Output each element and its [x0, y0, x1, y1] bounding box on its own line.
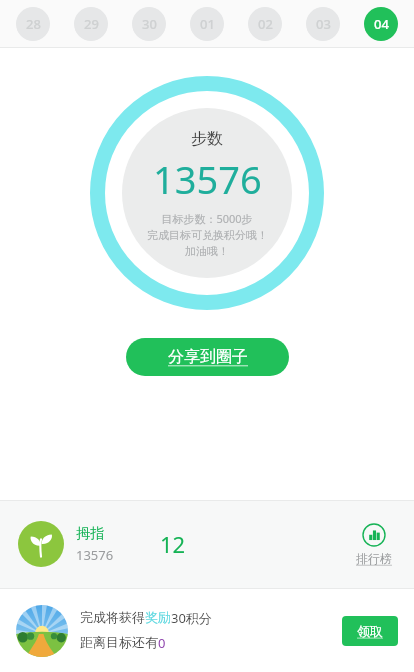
staticText: 01	[200, 15, 215, 33]
staticText: 目标步数：5000步	[161, 211, 253, 226]
staticText: 13576	[153, 153, 262, 205]
staticText: 02	[258, 15, 273, 33]
staticText: 30	[142, 15, 157, 33]
button[interactable]: Sunrise scene	[16, 605, 68, 657]
staticText: 0	[158, 634, 166, 652]
staticText: 04	[374, 15, 389, 33]
staticText: 30积分	[171, 609, 212, 627]
button[interactable]: 01	[190, 7, 224, 41]
staticText: 03	[316, 15, 331, 33]
staticText: 领取	[357, 623, 383, 639]
button[interactable]: Plant	[18, 521, 64, 567]
staticText: 13576	[76, 546, 114, 564]
button[interactable]: 29	[74, 7, 108, 41]
staticText: 距离目标还有	[80, 634, 158, 650]
staticText: 拇指	[76, 525, 104, 543]
staticText: 28	[26, 15, 41, 33]
button[interactable]: 分享到圈子	[126, 338, 289, 376]
button[interactable]: 排行榜	[352, 519, 396, 570]
button[interactable]: 04	[364, 7, 398, 41]
staticText: 排行榜	[356, 551, 392, 566]
button[interactable]: 03	[306, 7, 340, 41]
staticText: 12	[160, 529, 186, 559]
staticText: 完成目标可兑换积分哦！	[147, 228, 268, 242]
staticText: 加油哦！	[185, 244, 229, 258]
button[interactable]: 30	[132, 7, 166, 41]
staticText: 奖励	[145, 609, 171, 625]
button[interactable]: 28	[16, 7, 50, 41]
button[interactable]: 02	[248, 7, 282, 41]
staticText: 步数	[191, 129, 223, 149]
staticText: 分享到圈子	[168, 347, 248, 367]
staticText: 29	[84, 15, 99, 33]
button[interactable]: 领取	[342, 616, 398, 646]
staticText: 完成将获得	[80, 609, 145, 625]
